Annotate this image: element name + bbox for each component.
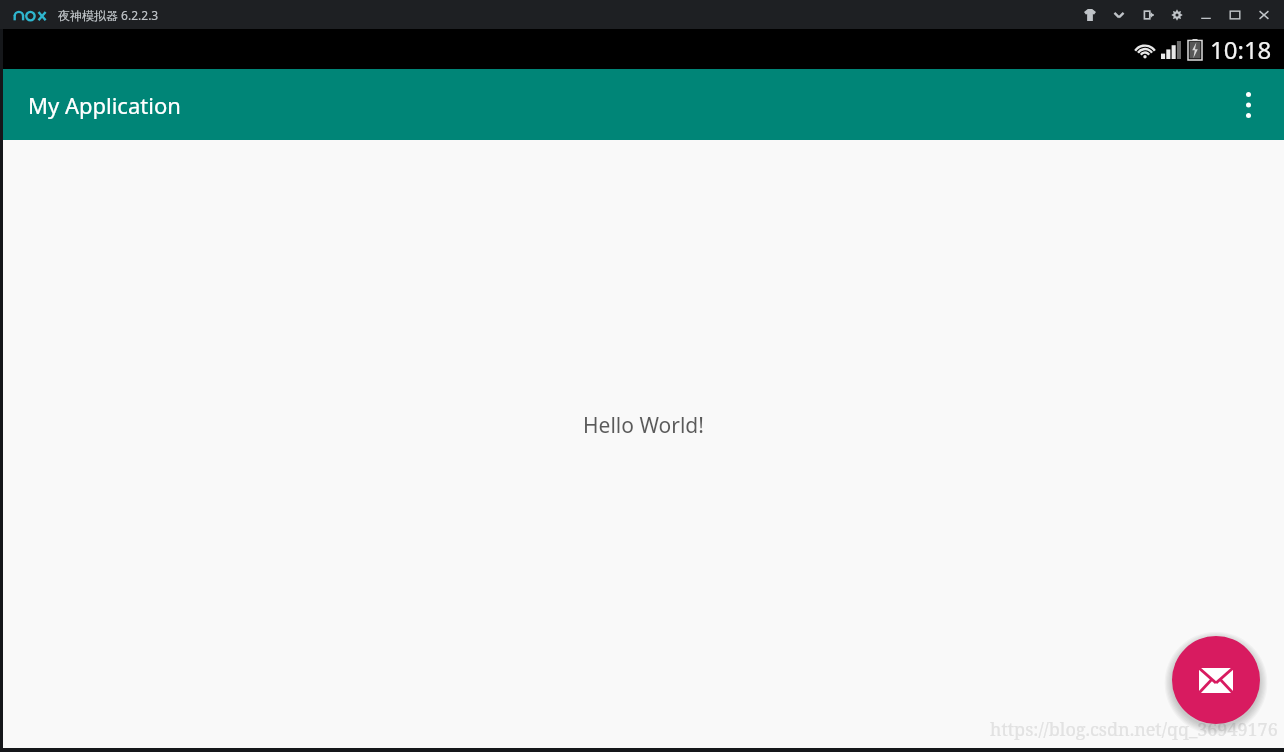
staticText: Hello World!: [583, 411, 704, 440]
button[interactable]: Settings: [1162, 0, 1191, 29]
button[interactable]: More: [1104, 0, 1133, 29]
button[interactable]: Close: [1249, 0, 1278, 29]
button[interactable]: Skin: [1075, 0, 1104, 29]
staticText: https://blog.csdn.net/qq_36949176: [990, 717, 1278, 742]
staticText: My Application: [28, 90, 181, 120]
button[interactable]: More options: [1224, 81, 1272, 129]
button[interactable]: Maximize: [1220, 0, 1249, 29]
button[interactable]: Compose email: [1172, 636, 1260, 724]
button[interactable]: Minimize: [1191, 0, 1220, 29]
staticText: 夜神模拟器 6.2.2.3: [58, 7, 159, 23]
button[interactable]: Pin: [1133, 0, 1162, 29]
staticText: 10:18: [1210, 33, 1272, 66]
